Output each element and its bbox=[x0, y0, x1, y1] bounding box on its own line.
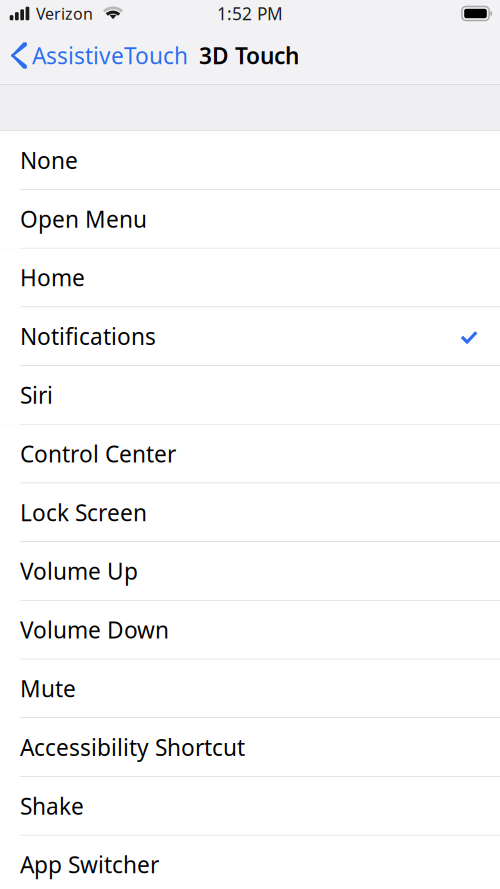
button[interactable]: Mute bbox=[0, 659, 500, 718]
staticText: Verizon bbox=[36, 3, 93, 24]
staticText: Siri bbox=[20, 380, 53, 410]
button[interactable]: Lock Screen bbox=[0, 483, 500, 542]
staticText: Home bbox=[20, 262, 85, 293]
button[interactable]: Open Menu bbox=[0, 190, 500, 248]
staticText: Mute bbox=[20, 673, 76, 703]
button[interactable]: Notifications bbox=[0, 307, 500, 366]
staticText: Volume Up bbox=[20, 556, 138, 586]
button[interactable]: App Switcher bbox=[0, 835, 500, 889]
button[interactable]: Volume Down bbox=[0, 601, 500, 659]
button[interactable]: AssistiveTouch bbox=[0, 27, 193, 84]
staticText: AssistiveTouch bbox=[32, 40, 188, 70]
staticText: Control Center bbox=[20, 439, 176, 469]
staticText: Lock Screen bbox=[20, 497, 147, 527]
staticText: Volume Down bbox=[20, 615, 169, 645]
button[interactable]: Home bbox=[0, 248, 500, 307]
staticText: Notifications bbox=[20, 321, 156, 351]
staticText: 3D Touch bbox=[199, 40, 299, 70]
staticText: Shake bbox=[20, 791, 84, 821]
staticText: Accessibility Shortcut bbox=[20, 732, 245, 762]
staticText: None bbox=[20, 145, 78, 175]
button[interactable]: Siri bbox=[0, 366, 500, 425]
staticText: App Switcher bbox=[20, 849, 159, 880]
button[interactable]: Shake bbox=[0, 777, 500, 835]
button[interactable]: Control Center bbox=[0, 425, 500, 483]
staticText: 1:52 PM bbox=[217, 2, 283, 25]
button[interactable]: Volume Up bbox=[0, 542, 500, 601]
button[interactable]: Accessibility Shortcut bbox=[0, 718, 500, 777]
button[interactable]: None bbox=[0, 131, 500, 190]
staticText: Open Menu bbox=[20, 204, 147, 234]
